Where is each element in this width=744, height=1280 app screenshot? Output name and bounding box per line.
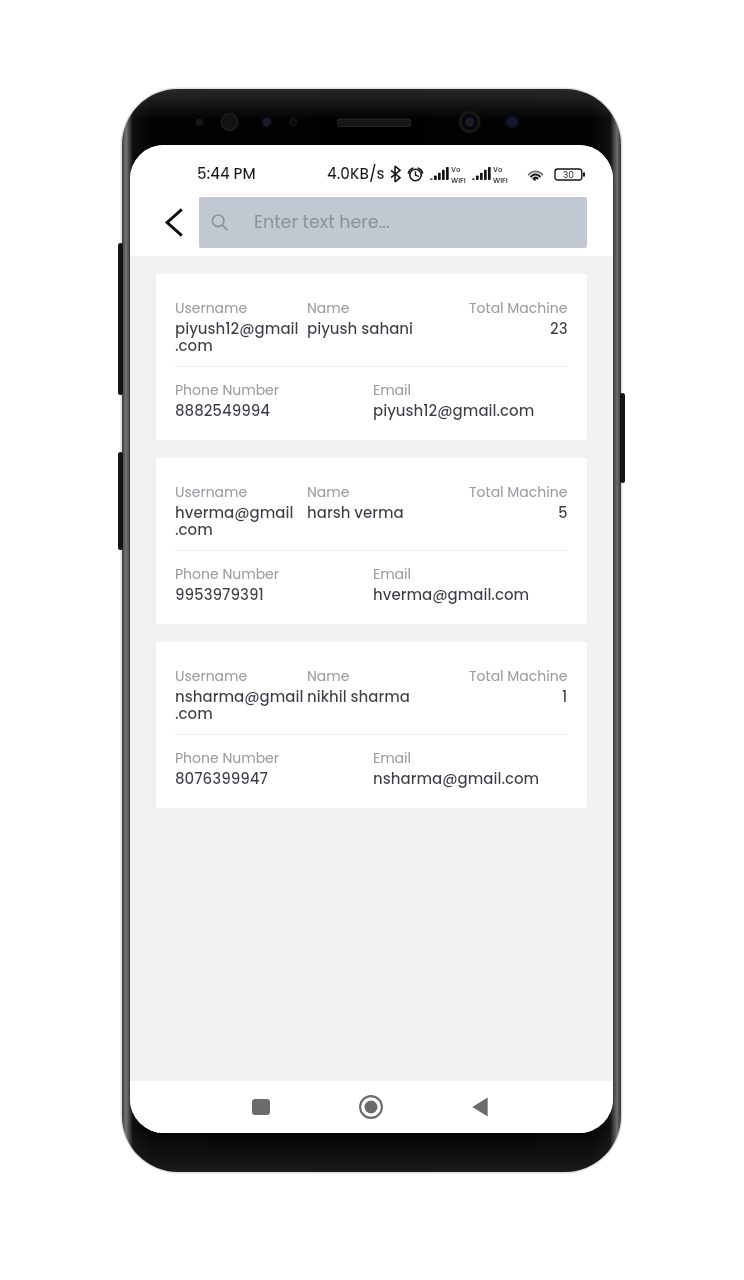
staticText: nsharma@gmail.com	[373, 768, 540, 789]
staticText: WiFi	[451, 176, 466, 186]
staticText: Phone Number	[175, 748, 279, 768]
staticText: Name	[307, 666, 350, 686]
staticText: Name	[307, 298, 350, 318]
staticText: harsh verma	[307, 502, 404, 523]
staticText: 30	[563, 169, 575, 180]
staticText: Email	[373, 380, 411, 400]
staticText: Phone Number	[175, 380, 279, 400]
button[interactable]: Username	[156, 458, 587, 624]
staticText: Username	[175, 666, 248, 686]
staticText: nsharma@gmail	[175, 686, 304, 707]
staticText: 5:44 PM	[197, 163, 256, 184]
staticText: 8882549994	[175, 400, 270, 421]
staticText: 23	[550, 318, 568, 339]
staticText: Phone Number	[175, 564, 279, 584]
staticText: Total Machine	[469, 482, 568, 502]
staticText: 9953979391	[175, 584, 264, 605]
staticText: Total Machine	[469, 666, 568, 686]
staticText: piyush12@gmail.com	[373, 400, 535, 421]
staticText: Email	[373, 564, 411, 584]
staticText: .com	[175, 335, 213, 356]
staticText: Name	[307, 482, 350, 502]
staticText: Email	[373, 748, 411, 768]
staticText: piyush12@gmail	[175, 318, 299, 339]
staticText: Vo	[493, 165, 503, 175]
staticText: Enter text here...	[254, 210, 390, 235]
staticText: 4.0KB/s	[327, 163, 385, 184]
staticText: 8076399947	[175, 768, 268, 789]
button[interactable]: Home	[348, 1084, 393, 1129]
button[interactable]: Username	[156, 274, 587, 440]
staticText: .com	[175, 519, 213, 540]
staticText: 5	[558, 502, 568, 523]
staticText: 1	[562, 686, 568, 707]
staticText: piyush sahani	[307, 318, 414, 339]
button[interactable]: Recent apps	[238, 1084, 283, 1129]
button[interactable]: Back	[150, 198, 198, 246]
staticText: Username	[175, 482, 248, 502]
staticText: .com	[175, 703, 213, 724]
staticText: Username	[175, 298, 248, 318]
staticText: Total Machine	[469, 298, 568, 318]
staticText: Vo	[451, 165, 461, 175]
staticText: hverma@gmail	[175, 502, 294, 523]
staticText: nikhil sharma	[307, 686, 410, 707]
button[interactable]: Enter text here...	[199, 197, 587, 248]
button[interactable]: Username	[156, 642, 587, 808]
staticText: hverma@gmail.com	[373, 584, 530, 605]
staticText: WiFi	[493, 176, 508, 186]
button[interactable]: Back	[457, 1084, 502, 1129]
